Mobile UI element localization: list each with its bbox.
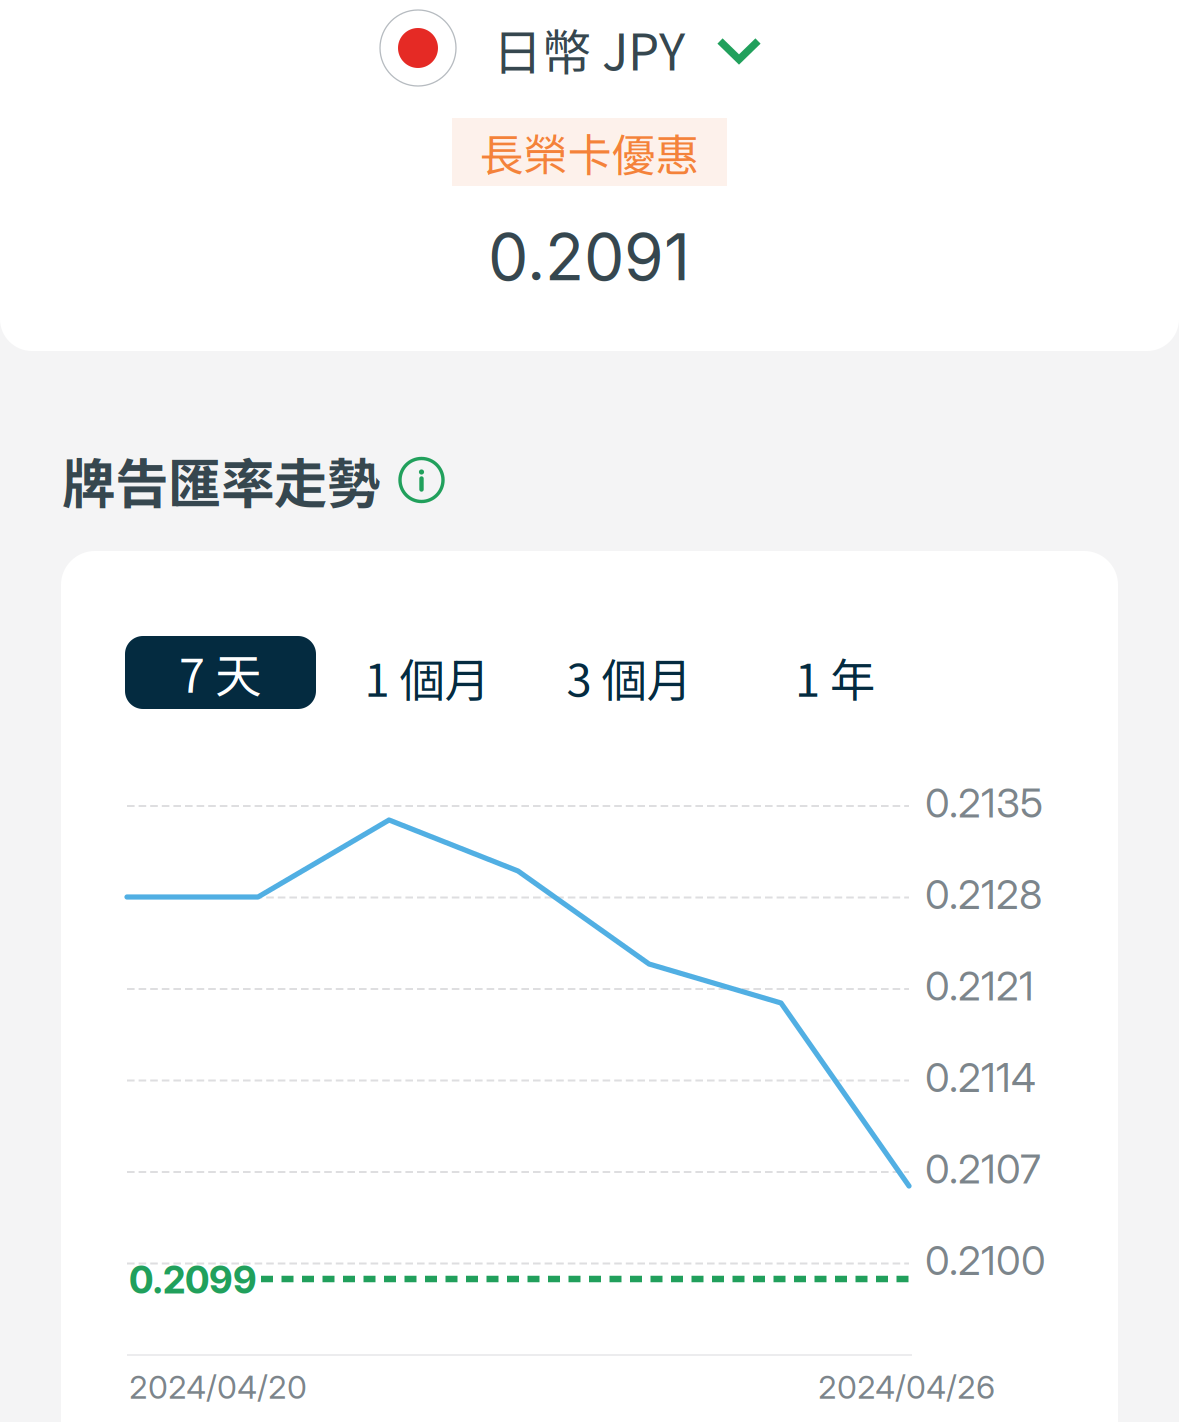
staticText: 0.2099 xyxy=(129,1257,257,1303)
staticText: 0.2091 xyxy=(488,218,690,296)
button[interactable]: 日幣 JPY xyxy=(380,0,783,96)
staticText: 0.2114 xyxy=(925,1053,1036,1102)
staticText: 1 個月 xyxy=(364,644,489,710)
staticText: 2024/04/20 xyxy=(129,1368,307,1406)
staticText: 長榮卡優惠 xyxy=(479,120,699,184)
staticText: 0.2100 xyxy=(925,1236,1046,1285)
staticText: 1 年 xyxy=(795,644,875,710)
button[interactable]: 7 天 xyxy=(125,636,316,709)
staticText: 0.2121 xyxy=(925,962,1034,1010)
staticText: 3 個月 xyxy=(566,644,691,710)
button[interactable]: Information xyxy=(400,458,443,501)
button[interactable]: 3 個月 xyxy=(539,641,719,712)
button[interactable]: 1 個月 xyxy=(337,641,517,712)
staticText: 7 天 xyxy=(179,639,262,706)
staticText: 2024/04/26 xyxy=(818,1368,995,1406)
staticText: 0.2128 xyxy=(925,870,1042,919)
staticText: 牌告匯率走勢 xyxy=(62,441,380,519)
staticText: 0.2107 xyxy=(925,1145,1041,1193)
button[interactable]: 1 年 xyxy=(765,641,905,712)
staticText: 0.2135 xyxy=(925,779,1043,827)
staticText: 日幣 JPY xyxy=(493,13,685,85)
